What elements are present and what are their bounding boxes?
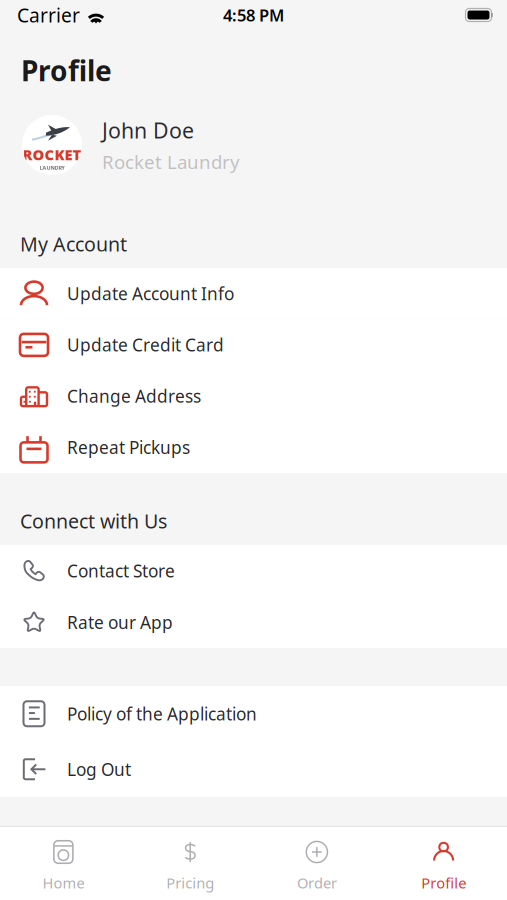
staticText: John Doe — [102, 116, 194, 144]
staticText: Update Account Info — [67, 282, 234, 305]
button[interactable]: Log Out — [0, 741, 507, 797]
staticText: My Account — [20, 231, 127, 257]
staticText: Update Credit Card — [67, 333, 224, 356]
staticText: Connect with Us — [20, 508, 167, 534]
staticText: LAUNDRY — [39, 164, 64, 171]
button[interactable]: Rate our App — [0, 596, 507, 648]
button[interactable]: Home — [0, 827, 127, 900]
staticText: Carrier — [17, 2, 80, 28]
staticText: Rocket Laundry — [102, 149, 240, 174]
button[interactable]: Policy of the Application — [0, 686, 507, 741]
staticText: Home — [42, 873, 84, 892]
button[interactable]: Change Address — [0, 370, 507, 422]
staticText: 4:58 PM — [223, 4, 284, 26]
staticText: Repeat Pickups — [67, 436, 190, 459]
button[interactable]: Order — [253, 827, 380, 900]
staticText: ROCKET — [22, 145, 81, 164]
button[interactable]: Pricing — [127, 827, 254, 900]
staticText: Policy of the Application — [67, 702, 257, 725]
staticText: Contact Store — [67, 559, 175, 582]
button[interactable]: Contact Store — [0, 545, 507, 596]
button[interactable]: Repeat Pickups — [0, 422, 507, 473]
button[interactable]: Profile — [380, 827, 507, 900]
staticText: Pricing — [166, 873, 214, 892]
staticText: Rate our App — [67, 611, 173, 634]
staticText: Order — [297, 873, 337, 892]
staticText: Log Out — [67, 758, 131, 781]
staticText: Profile — [21, 52, 112, 89]
staticText: Profile — [421, 873, 466, 892]
button[interactable]: Update Account Info — [0, 268, 507, 319]
staticText: Change Address — [67, 385, 201, 408]
button[interactable]: Update Credit Card — [0, 319, 507, 370]
